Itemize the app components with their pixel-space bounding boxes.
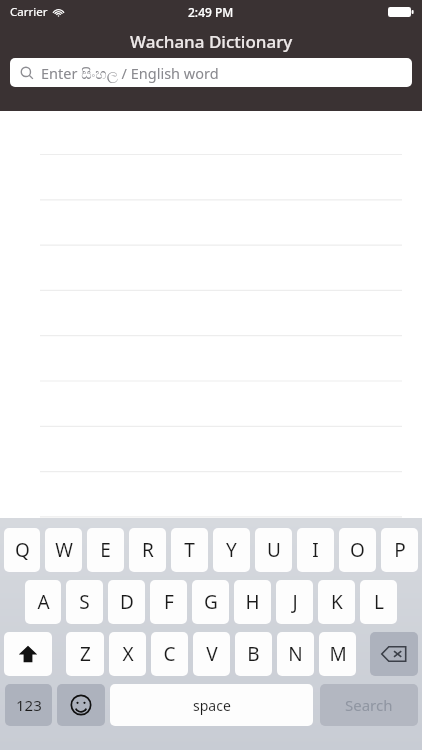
button[interactable]: E <box>87 528 124 572</box>
staticText: V <box>206 641 218 667</box>
button[interactable]: Q <box>4 528 40 572</box>
staticText: Wachana Dictionary <box>130 30 293 53</box>
button[interactable]: X <box>109 632 146 676</box>
button[interactable]: N <box>277 632 314 676</box>
button[interactable]: Enter සිංහල / English word <box>10 58 412 87</box>
button[interactable]: B <box>235 632 272 676</box>
button[interactable]: A <box>25 580 61 624</box>
staticText: Y <box>226 537 237 563</box>
button[interactable]: W <box>45 528 82 572</box>
staticText: Search <box>345 695 393 715</box>
button[interactable]: R <box>129 528 166 572</box>
staticText: B <box>247 641 260 667</box>
button[interactable]: H <box>234 580 271 624</box>
button[interactable]: L <box>360 580 397 624</box>
staticText: M <box>329 641 347 667</box>
button[interactable]: K <box>318 580 355 624</box>
staticText: S <box>79 589 90 615</box>
button[interactable]: 123 <box>5 684 52 726</box>
staticText: 2:49 PM <box>188 4 234 20</box>
button[interactable]: Search <box>320 684 418 726</box>
staticText: Enter සිංහල / English word <box>41 63 219 83</box>
button[interactable]: T <box>171 528 208 572</box>
staticText: F <box>164 589 174 615</box>
button[interactable]: Z <box>66 632 104 676</box>
staticText: P <box>394 537 406 563</box>
staticText: A <box>37 589 50 615</box>
button[interactable]: G <box>192 580 229 624</box>
staticText: N <box>288 641 303 667</box>
staticText: H <box>245 589 260 615</box>
staticText: J <box>292 589 298 615</box>
staticText: U <box>267 537 281 563</box>
button[interactable]: Backspace <box>370 632 418 676</box>
button[interactable]: V <box>193 632 230 676</box>
button[interactable]: Y <box>213 528 250 572</box>
button[interactable]: F <box>150 580 187 624</box>
staticText: R <box>142 537 154 563</box>
button[interactable]: M <box>319 632 356 676</box>
staticText: L <box>374 589 384 615</box>
button[interactable]: S <box>66 580 103 624</box>
button[interactable]: space <box>110 684 313 726</box>
button[interactable]: I <box>297 528 334 572</box>
button[interactable]: P <box>381 528 418 572</box>
staticText: X <box>122 641 134 667</box>
button[interactable]: D <box>108 580 145 624</box>
staticText: K <box>331 589 343 615</box>
staticText: D <box>120 589 134 615</box>
button[interactable]: C <box>151 632 188 676</box>
button[interactable]: O <box>339 528 376 572</box>
button[interactable]: Emoji <box>57 684 105 726</box>
staticText: Carrier <box>10 4 48 20</box>
staticText: T <box>184 537 195 563</box>
staticText: 123 <box>16 695 42 715</box>
button[interactable]: J <box>276 580 313 624</box>
staticText: G <box>204 589 218 615</box>
staticText: E <box>100 537 111 563</box>
button[interactable]: U <box>255 528 292 572</box>
staticText: C <box>163 641 176 667</box>
button[interactable]: Shift <box>4 632 52 676</box>
staticText: space <box>193 696 231 715</box>
staticText: I <box>312 537 319 563</box>
staticText: Q <box>15 537 30 563</box>
staticText: W <box>55 537 73 563</box>
staticText: O <box>350 537 365 563</box>
staticText: Z <box>80 641 91 667</box>
